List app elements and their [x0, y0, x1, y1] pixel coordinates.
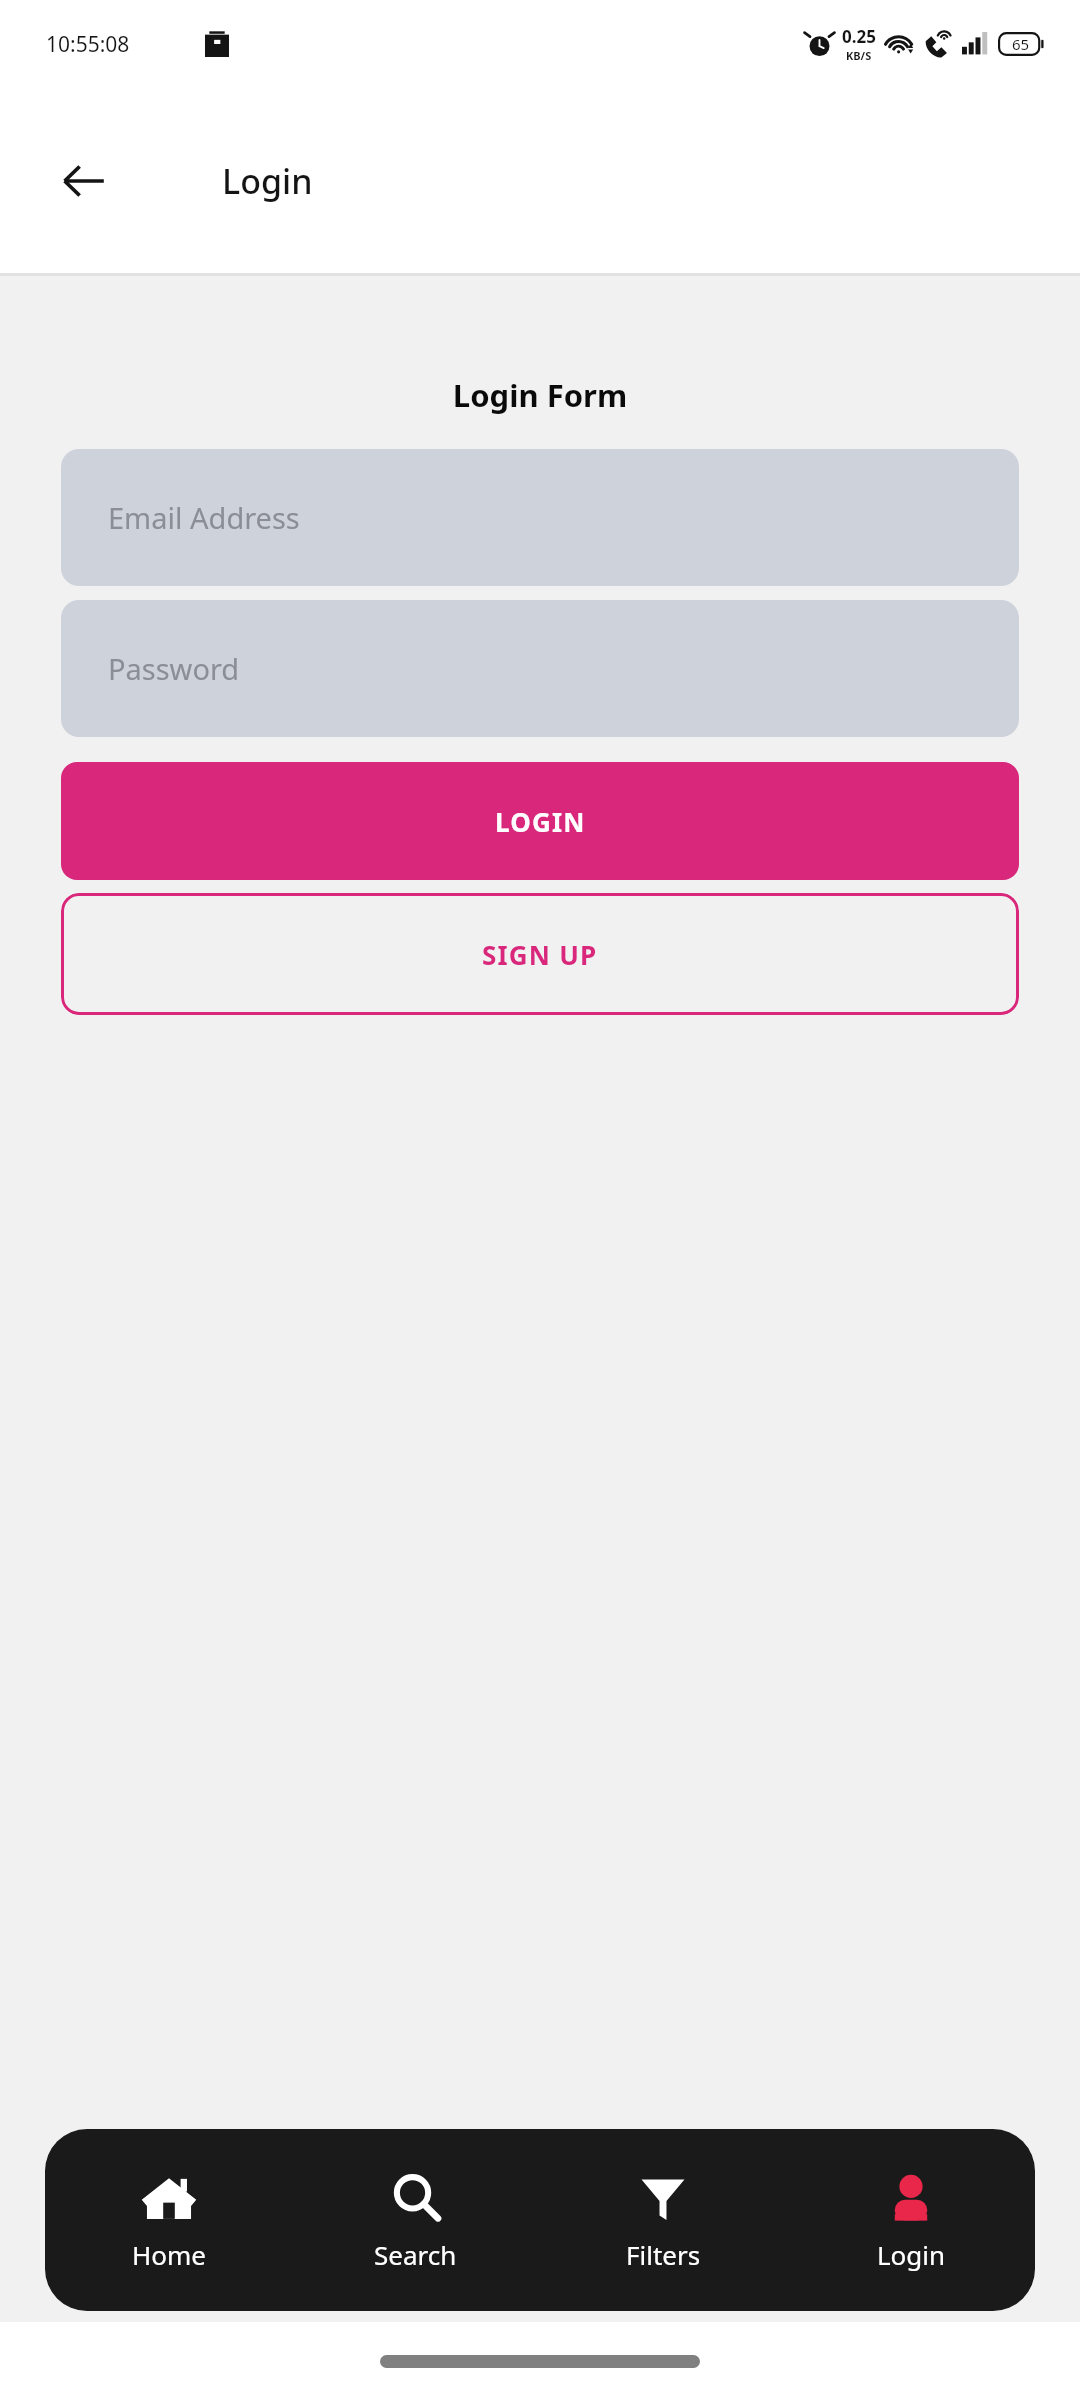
staticText: KB/S — [846, 48, 872, 63]
staticText: Home — [132, 2237, 206, 2272]
staticText: Search — [374, 2237, 457, 2272]
staticText: Login — [877, 2237, 946, 2272]
button[interactable]: Filters — [539, 2129, 787, 2311]
button[interactable]: Search — [292, 2129, 539, 2311]
staticText: Login — [222, 158, 313, 204]
button[interactable]: Email Address — [61, 449, 1019, 586]
button[interactable]: Login — [787, 2129, 1035, 2311]
staticText: 10:55:08 — [46, 30, 130, 59]
staticText: 65 — [1012, 34, 1030, 54]
button[interactable]: Back — [48, 145, 120, 217]
button[interactable]: SIGN UP — [61, 893, 1019, 1015]
button[interactable]: LOGIN — [61, 762, 1019, 880]
staticText: Password — [108, 649, 240, 688]
staticText: SIGN UP — [482, 937, 598, 972]
staticText: 0.25 — [842, 25, 876, 48]
staticText: Filters — [626, 2237, 701, 2272]
button[interactable]: Home — [45, 2129, 292, 2311]
button[interactable]: Password — [61, 600, 1019, 737]
staticText: LOGIN — [495, 804, 586, 839]
staticText: Login Form — [0, 374, 1080, 416]
staticText: Email Address — [108, 498, 300, 537]
